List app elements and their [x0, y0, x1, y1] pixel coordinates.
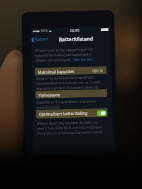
button[interactable]: Optimalisert batterilading [97, 110, 107, 116]
staticText: 100 % [92, 68, 104, 73]
staticText: Telia [41, 28, 48, 33]
button[interactable]: Back to Batteri [31, 34, 50, 45]
staticText: Ytelsesevne [38, 92, 61, 98]
staticText: levetid. [36, 90, 48, 96]
button[interactable]: Ytelsesevne [35, 89, 107, 99]
staticText: iPhone lærer seg hvordan du lader, og ve… [37, 119, 108, 126]
staticText: Batteriet er for øyeblikket i stand til … [36, 98, 96, 105]
staticText: iPhone viser andre opplysninger om [35, 46, 94, 53]
button[interactable]: Mer om det... [73, 56, 95, 62]
staticText: yte maksimalt. [36, 104, 61, 110]
staticText: Dette er et mål på batterikapasiteten [36, 74, 96, 81]
staticText: oppdaterte maksimale kapasiteten [35, 51, 91, 58]
staticText: med å lade forbi 80 % inntil du må bruke… [37, 124, 108, 131]
staticText: tilbake om nyttilstand. [35, 57, 72, 63]
staticText: Optimalisert batterilading [39, 111, 88, 117]
button[interactable]: Optimalisert batterilading [36, 108, 108, 119]
staticText: Det bidrar til å forlenge batteriets lev… [37, 129, 103, 136]
button[interactable]: Maksimal kapasitet [35, 66, 107, 76]
staticText: kapasitet kan føre til redusert ytelse o… [36, 84, 99, 91]
staticText: Maksimal kapasitet [38, 69, 75, 75]
staticText: 20:40 [70, 28, 80, 33]
staticText: Batteritilstand [59, 35, 93, 43]
staticText: sammenliknet med da det var ny. Lavere [36, 79, 102, 86]
staticText: Batteri [35, 36, 49, 43]
